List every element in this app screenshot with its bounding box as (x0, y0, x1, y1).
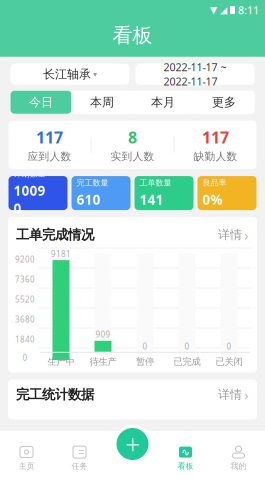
button[interactable]: 任务 (53, 445, 106, 471)
staticText: 0% (202, 191, 222, 208)
staticText: 更多 (212, 95, 236, 110)
staticText: 详情 (218, 387, 242, 402)
staticText: 7360 (15, 274, 35, 285)
staticText: 9181 (51, 248, 71, 259)
staticText: 已关闭 (215, 356, 242, 367)
staticText: 任务 (71, 461, 87, 471)
staticText: 良品率 (202, 178, 226, 188)
button[interactable]: 详情 (218, 225, 249, 245)
staticText: 完工统计数据 (16, 386, 94, 403)
staticText: ∿ (181, 446, 190, 458)
button[interactable]: 今日 (10, 91, 71, 114)
button[interactable]: 主页 (0, 445, 53, 471)
staticText: 5520 (15, 294, 35, 305)
staticText: 待生产 (89, 356, 116, 367)
staticText: 看板 (112, 23, 152, 48)
staticText: 我的 (230, 461, 246, 471)
staticText: 0 (22, 352, 27, 363)
staticText: 8:11 (238, 3, 259, 17)
button[interactable]: 良品率 (197, 176, 256, 210)
staticText: 缺勤人数 (193, 150, 237, 163)
staticText: + (125, 426, 140, 462)
staticText: 0 (142, 341, 147, 352)
staticText: 看板 (177, 461, 193, 471)
button[interactable]: 详情 (218, 385, 249, 404)
button[interactable]: 工单数量 (134, 176, 193, 210)
staticText: › (244, 385, 249, 404)
staticText: 工单完成情况 (16, 227, 94, 243)
staticText: ▾ (93, 70, 97, 79)
button[interactable]: Add (113, 425, 151, 463)
staticText: 1840 (15, 334, 35, 345)
staticText: 计划数量 (13, 169, 45, 179)
button[interactable]: 完工数量 (71, 176, 130, 210)
staticText: 2022-11-17 ~ 2022-11-17 (163, 60, 226, 88)
staticText: 0 (226, 341, 231, 352)
button[interactable]: 我的 (212, 445, 265, 471)
staticText: 610 (76, 191, 100, 208)
staticText: 完工数量 (76, 178, 108, 188)
staticText: 117 (202, 127, 229, 148)
staticText: 本月 (151, 95, 175, 110)
button[interactable]: 计划数量 (8, 176, 67, 210)
staticText: 今日 (29, 95, 53, 110)
staticText: 本周 (90, 95, 114, 110)
staticText: ▼ (210, 5, 217, 15)
staticText: 生产中 (47, 356, 74, 367)
staticText: 10090 (13, 182, 45, 217)
staticText: ◢ (220, 5, 227, 15)
staticText: 工单数量 (139, 178, 171, 188)
staticText: 实到人数 (110, 150, 154, 163)
button[interactable]: 2022-11-17 ~ 2022-11-17 (135, 64, 254, 85)
staticText: 909 (95, 329, 110, 340)
button[interactable]: 本月 (132, 91, 193, 114)
button[interactable]: ∿ (159, 445, 212, 471)
staticText: 117 (36, 127, 63, 148)
staticText: 8 (128, 127, 137, 148)
staticText: 应到人数 (27, 150, 71, 163)
staticText: 3680 (15, 314, 35, 325)
button[interactable]: 本周 (71, 91, 132, 114)
staticText: › (244, 225, 249, 245)
staticText: 主页 (18, 461, 34, 471)
staticText: 长江轴承 (43, 67, 91, 82)
staticText: 141 (139, 191, 163, 208)
staticText: 9200 (15, 254, 35, 265)
staticText: 暂停 (136, 356, 154, 367)
staticText: 已完成 (173, 356, 200, 367)
staticText: 详情 (218, 227, 242, 242)
button[interactable]: 长江轴承 (10, 64, 129, 85)
staticText: 0 (184, 341, 189, 352)
button[interactable]: 更多 (193, 91, 254, 114)
